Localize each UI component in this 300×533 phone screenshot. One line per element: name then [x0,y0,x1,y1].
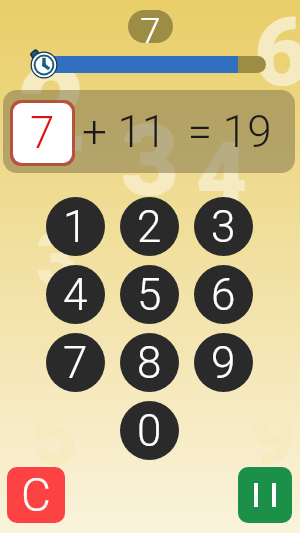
staticText: 1 [63,201,88,253]
staticText: C [21,468,51,522]
button[interactable]: Clear [7,467,65,523]
button[interactable]: 8 [120,333,179,392]
staticText: 0 [137,405,162,457]
other: Timer [28,48,62,82]
staticText: 4 [63,269,88,321]
staticText: 9 [211,337,236,389]
staticText: 7 [140,10,161,43]
button[interactable]: 2 [120,197,179,256]
button[interactable]: 9 [194,333,253,392]
staticText: 6 [211,269,236,321]
button[interactable]: 5 [120,265,179,324]
staticText: 2 [137,201,162,253]
button[interactable]: 3 [194,197,253,256]
staticText: 3 [36,216,79,303]
staticText: 5 [32,392,78,483]
staticText: 7 [30,107,55,159]
staticText: 6 [254,0,300,108]
staticText: 9 [250,392,296,483]
staticText: 8 [137,337,162,389]
staticText: 2 [18,42,87,180]
staticText: 7 [63,337,88,389]
staticText: 3 [211,201,236,253]
button[interactable]: 1 [46,197,105,256]
button[interactable]: 0 [120,401,179,460]
staticText: + 11 = 19 [82,106,272,158]
staticText: 5 [137,269,162,321]
staticText: 4 [196,122,248,225]
staticText: 3 [121,102,179,219]
button[interactable]: Pause [238,467,292,523]
button[interactable]: 6 [194,265,253,324]
button[interactable]: 4 [46,265,105,324]
button[interactable]: 7 [46,333,105,392]
